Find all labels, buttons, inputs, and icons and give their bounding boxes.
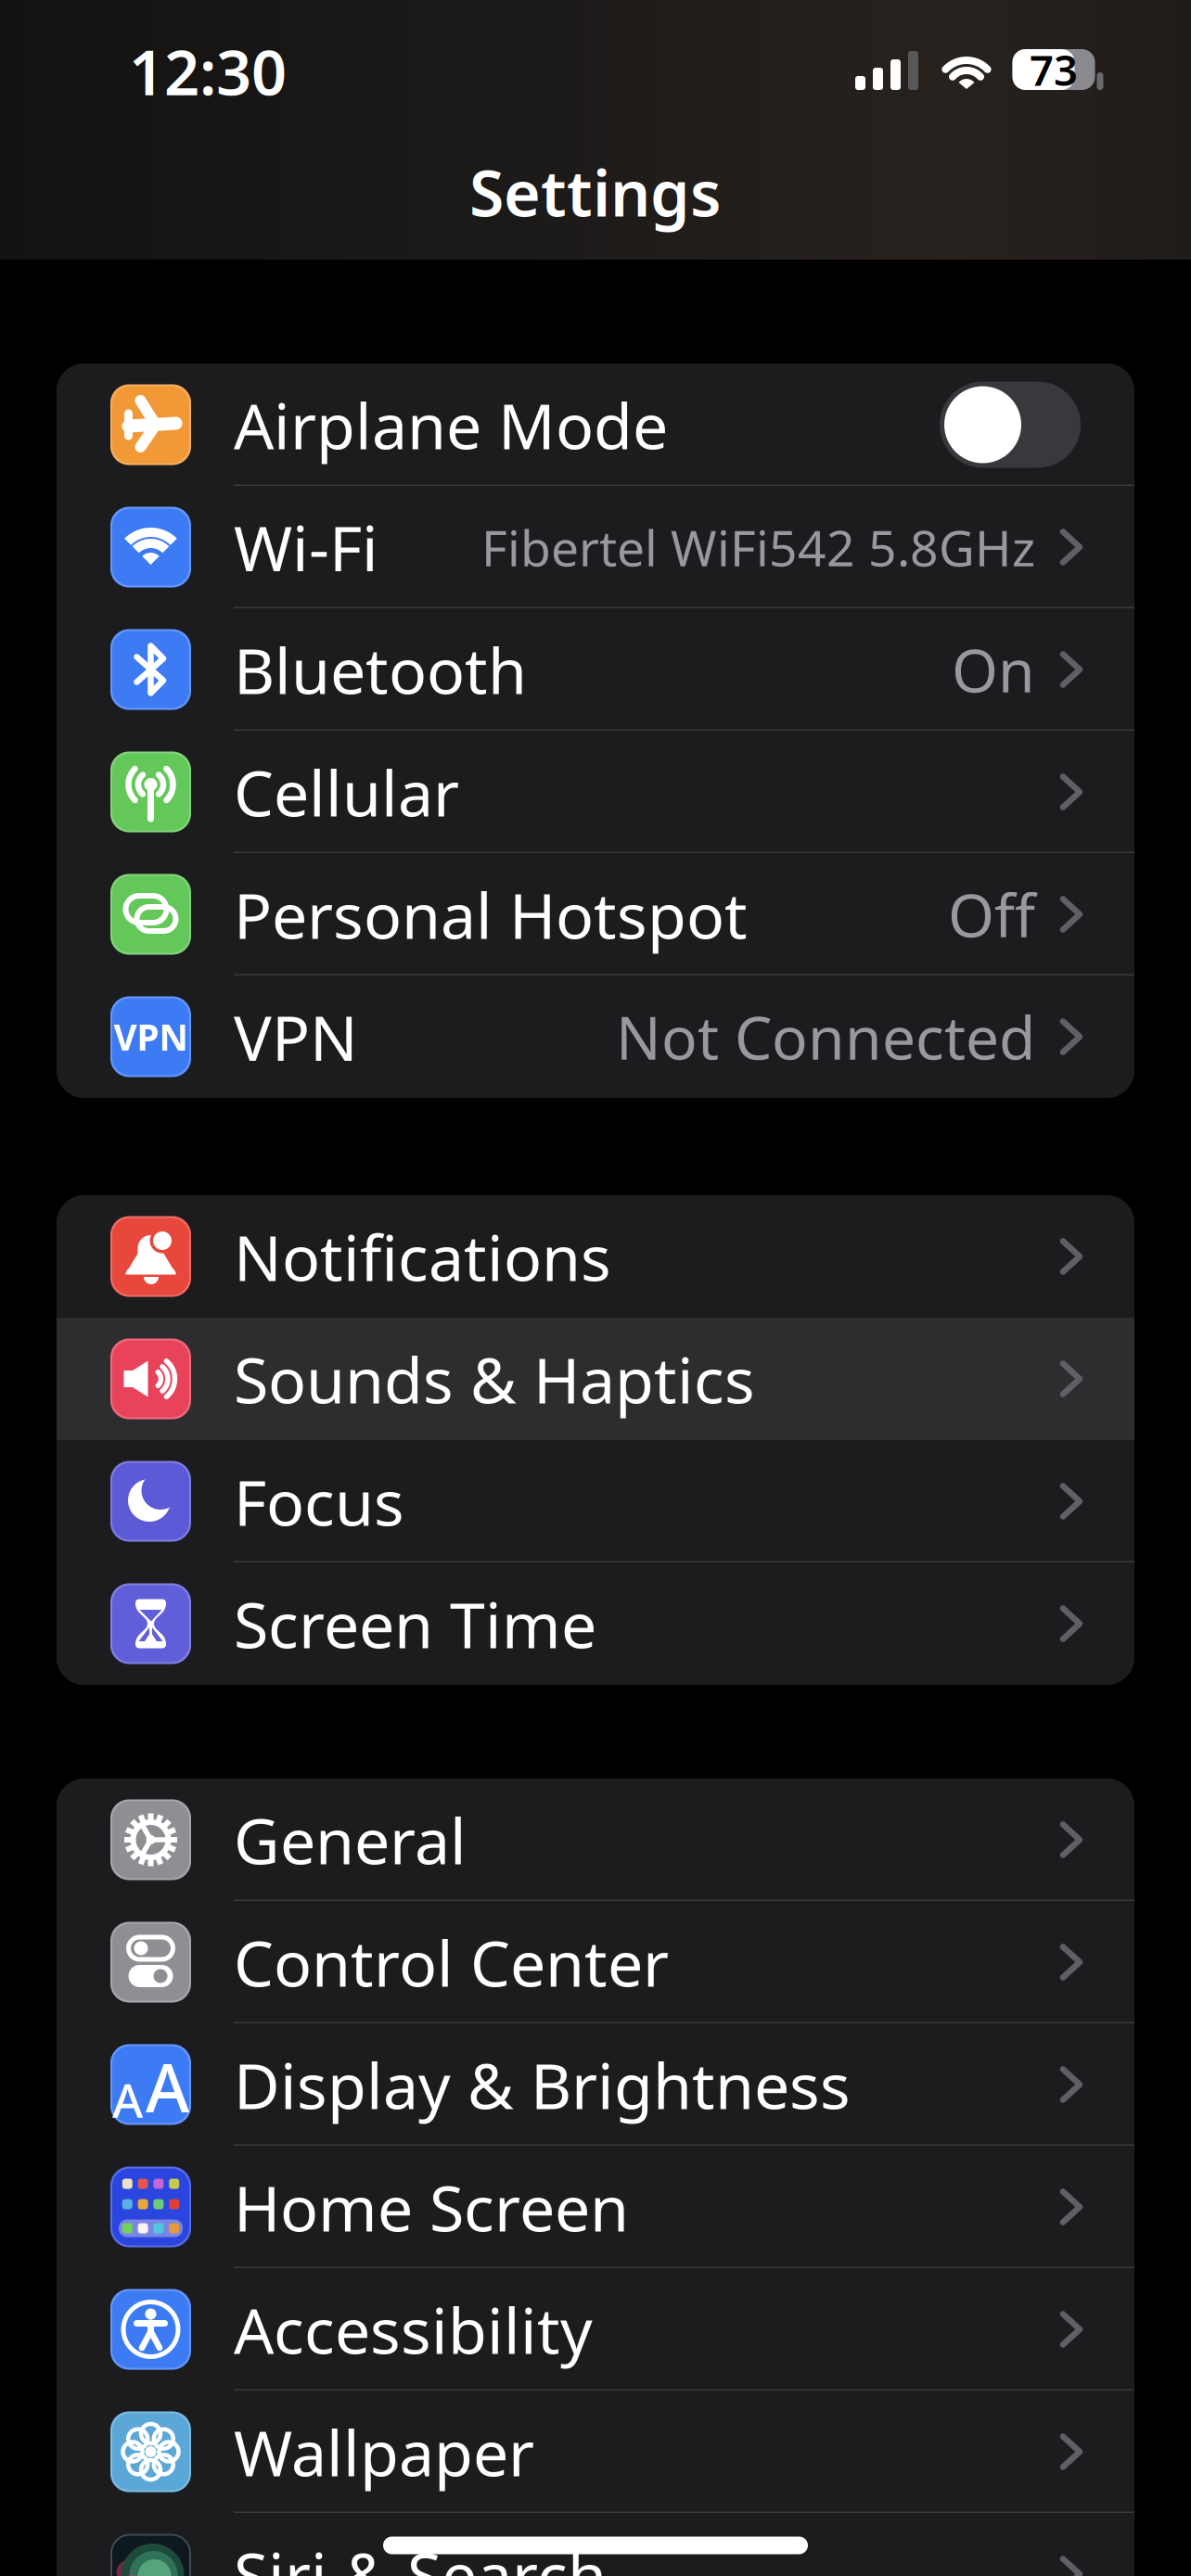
- staticText: Focus: [234, 1459, 404, 1543]
- staticText: 73: [1030, 42, 1078, 97]
- staticText: Fibertel WiFi542 5.8GHz: [481, 514, 1035, 580]
- button[interactable]: VPN: [57, 976, 1134, 1098]
- button[interactable]: General: [57, 1779, 1134, 1901]
- button[interactable]: Siri & Search: [57, 2513, 1134, 2576]
- staticText: Cellular: [234, 750, 459, 834]
- staticText: Sounds & Haptics: [234, 1337, 755, 1421]
- staticText: Settings: [469, 150, 722, 234]
- staticText: Notifications: [234, 1215, 611, 1298]
- staticText: Display & Brightness: [234, 2043, 851, 2126]
- button[interactable]: Bluetooth: [57, 608, 1134, 731]
- staticText: General: [234, 1798, 467, 1882]
- staticText: Accessibility: [234, 2287, 593, 2371]
- button[interactable]: Focus: [57, 1440, 1134, 1562]
- staticText: Screen Time: [234, 1582, 596, 1665]
- staticText: Bluetooth: [234, 628, 527, 711]
- button[interactable]: Sounds & Haptics: [57, 1318, 1134, 1440]
- staticText: On: [952, 630, 1035, 709]
- staticText: A: [146, 2042, 189, 2131]
- staticText: Siri & Search: [234, 2532, 607, 2576]
- button[interactable]: Screen Time: [57, 1562, 1134, 1685]
- button[interactable]: A: [57, 2023, 1134, 2146]
- staticText: Wallpaper: [234, 2410, 534, 2494]
- staticText: Home Screen: [234, 2165, 629, 2249]
- button[interactable]: Notifications: [57, 1195, 1134, 1318]
- button[interactable]: Wallpaper: [57, 2391, 1134, 2513]
- button[interactable]: Personal Hotspot: [57, 853, 1134, 976]
- staticText: A: [112, 2068, 143, 2131]
- staticText: Airplane Mode: [234, 383, 668, 467]
- button[interactable]: Airplane Mode: [57, 363, 1134, 486]
- staticText: Not Connected: [616, 997, 1035, 1076]
- button[interactable]: Control Center: [57, 1901, 1134, 2023]
- button[interactable]: Home Screen: [57, 2146, 1134, 2268]
- staticText: VPN: [234, 995, 358, 1079]
- button[interactable]: Accessibility: [57, 2268, 1134, 2391]
- button[interactable]: Cellular: [57, 731, 1134, 853]
- staticText: Personal Hotspot: [234, 872, 748, 956]
- staticText: Control Center: [234, 1920, 669, 2004]
- staticText: VPN: [114, 1013, 188, 1060]
- button[interactable]: Wi-Fi: [57, 486, 1134, 608]
- staticText: 12:30: [129, 30, 287, 112]
- staticText: Off: [948, 875, 1035, 954]
- staticText: Wi-Fi: [234, 505, 378, 589]
